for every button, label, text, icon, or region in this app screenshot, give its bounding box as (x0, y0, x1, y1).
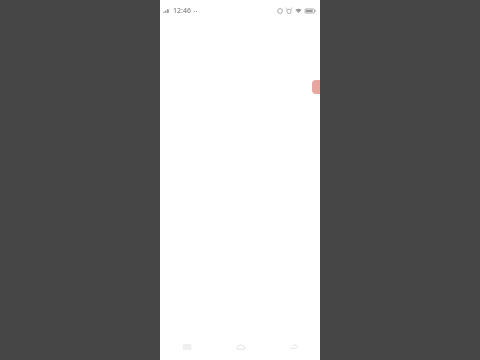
staticText: 12:46 (173, 6, 191, 16)
